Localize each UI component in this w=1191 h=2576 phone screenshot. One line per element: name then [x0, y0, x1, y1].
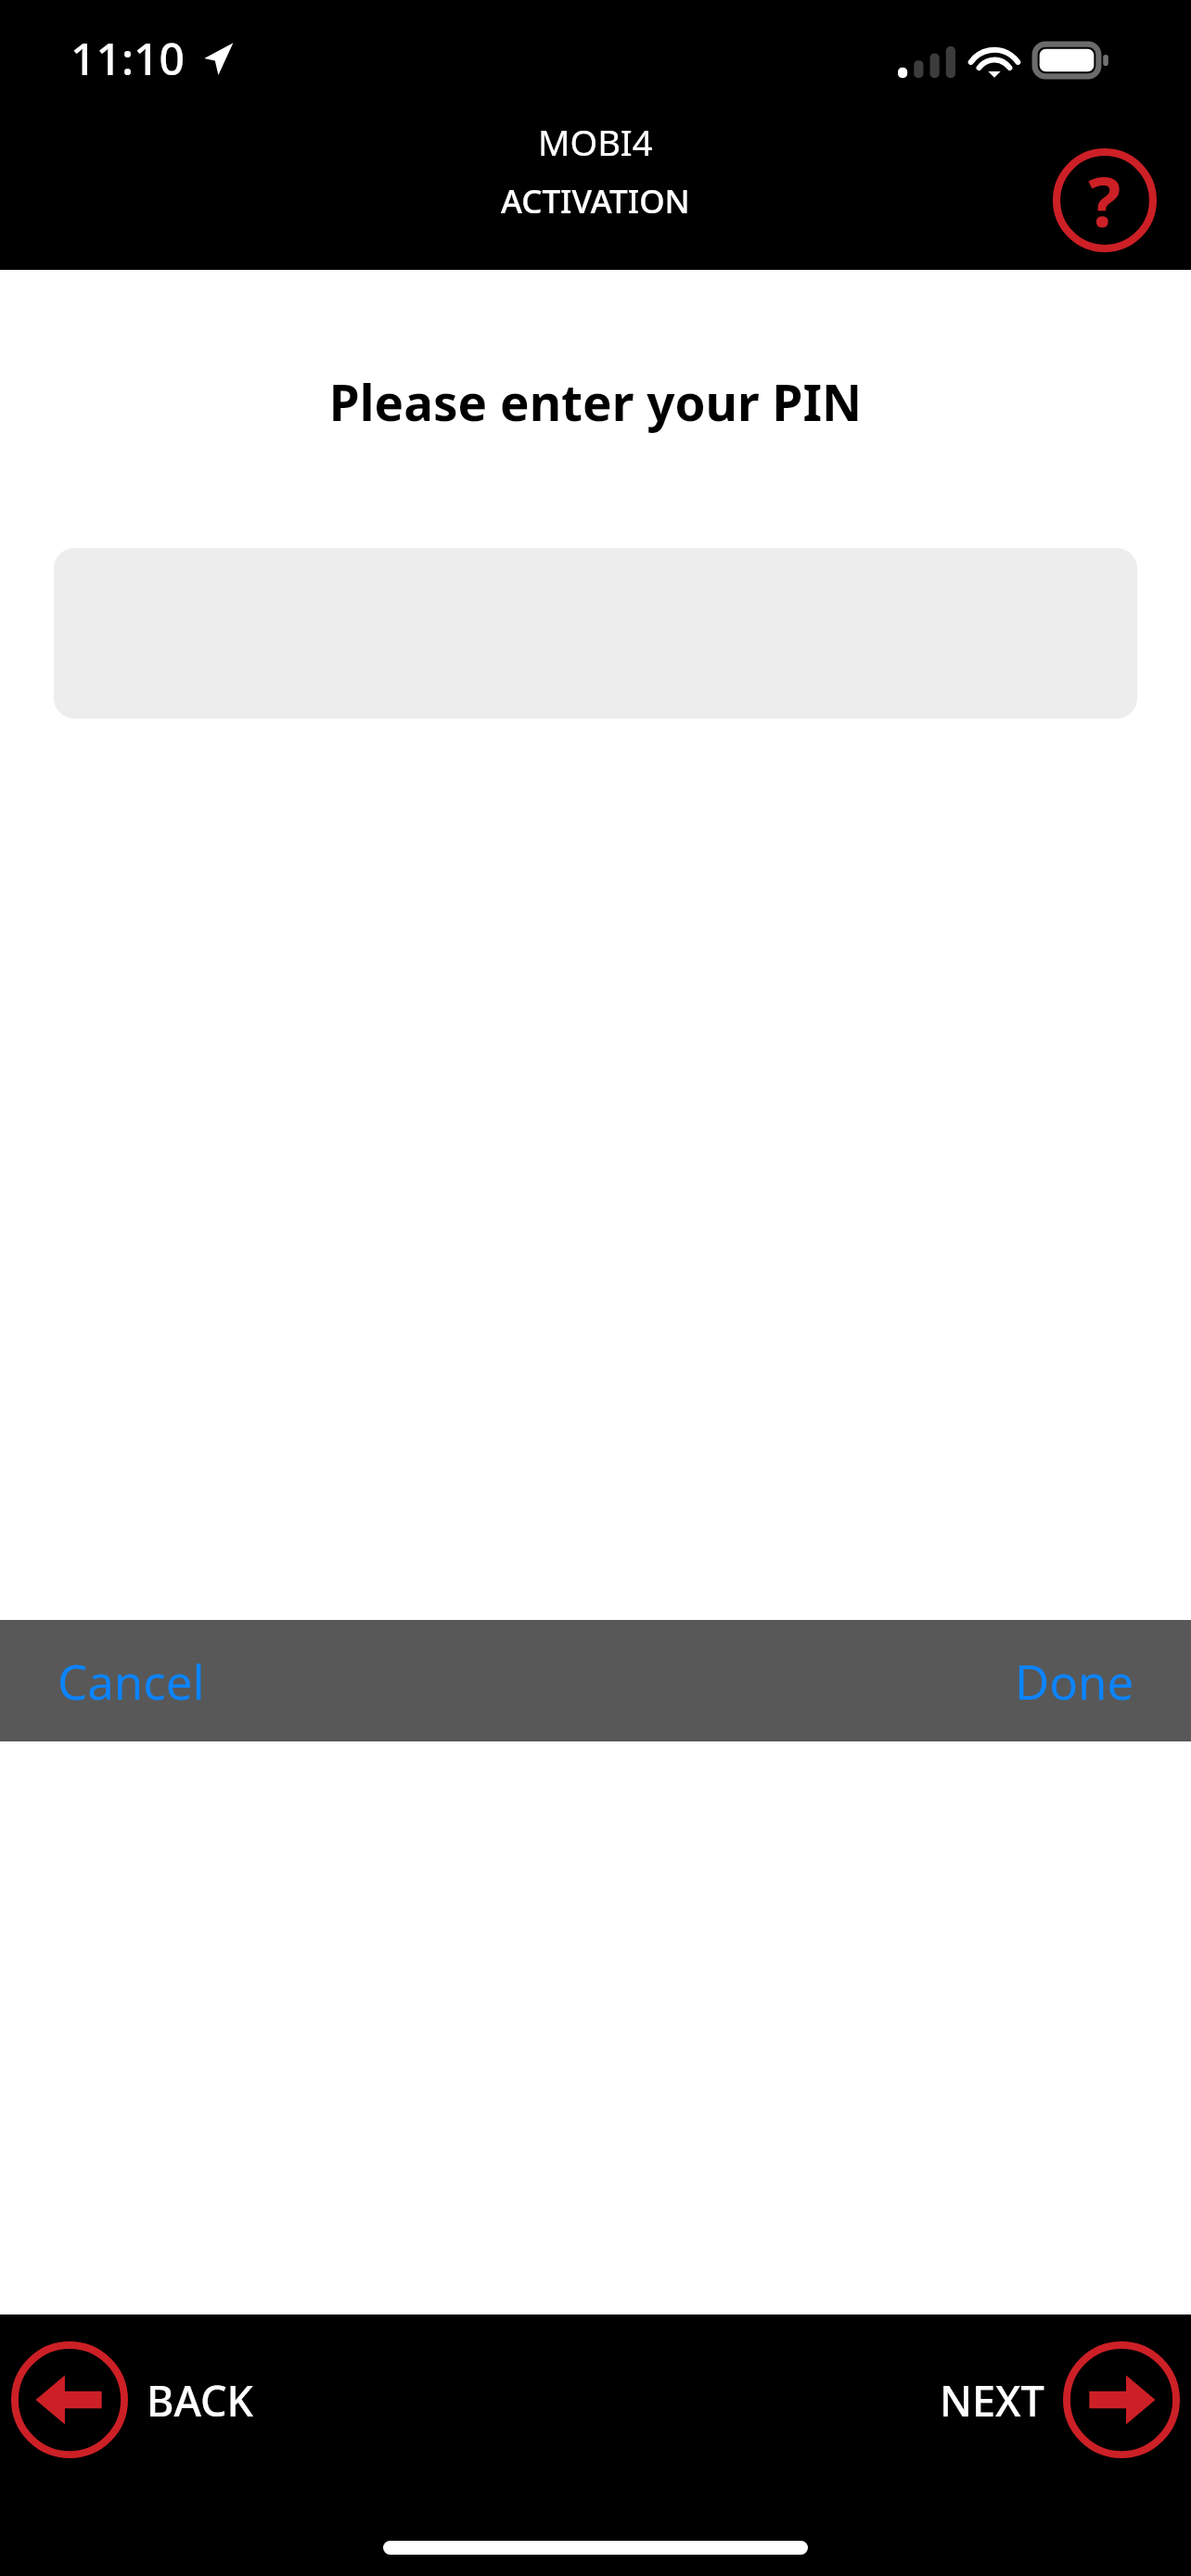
- staticText: Cancel: [58, 1649, 205, 1713]
- button[interactable]: Done: [983, 1630, 1191, 1731]
- other: Back: [11, 2341, 128, 2458]
- staticText: ACTIVATION: [501, 179, 690, 223]
- button[interactable]: Cancel: [0, 1630, 237, 1731]
- button[interactable]: Help: [1047, 143, 1162, 258]
- staticText: Please enter your PIN: [0, 368, 1191, 435]
- staticText: NEXT: [940, 2372, 1044, 2429]
- staticText: Done: [1015, 1649, 1134, 1713]
- button[interactable]: NEXT: [940, 2341, 1180, 2458]
- button[interactable]: Back: [11, 2341, 254, 2458]
- staticText: BACK: [147, 2372, 254, 2429]
- staticText: ?: [1088, 154, 1121, 248]
- staticText: 11:10: [70, 28, 185, 88]
- other: Next: [1063, 2341, 1180, 2458]
- staticText: MOBI4: [538, 118, 653, 166]
